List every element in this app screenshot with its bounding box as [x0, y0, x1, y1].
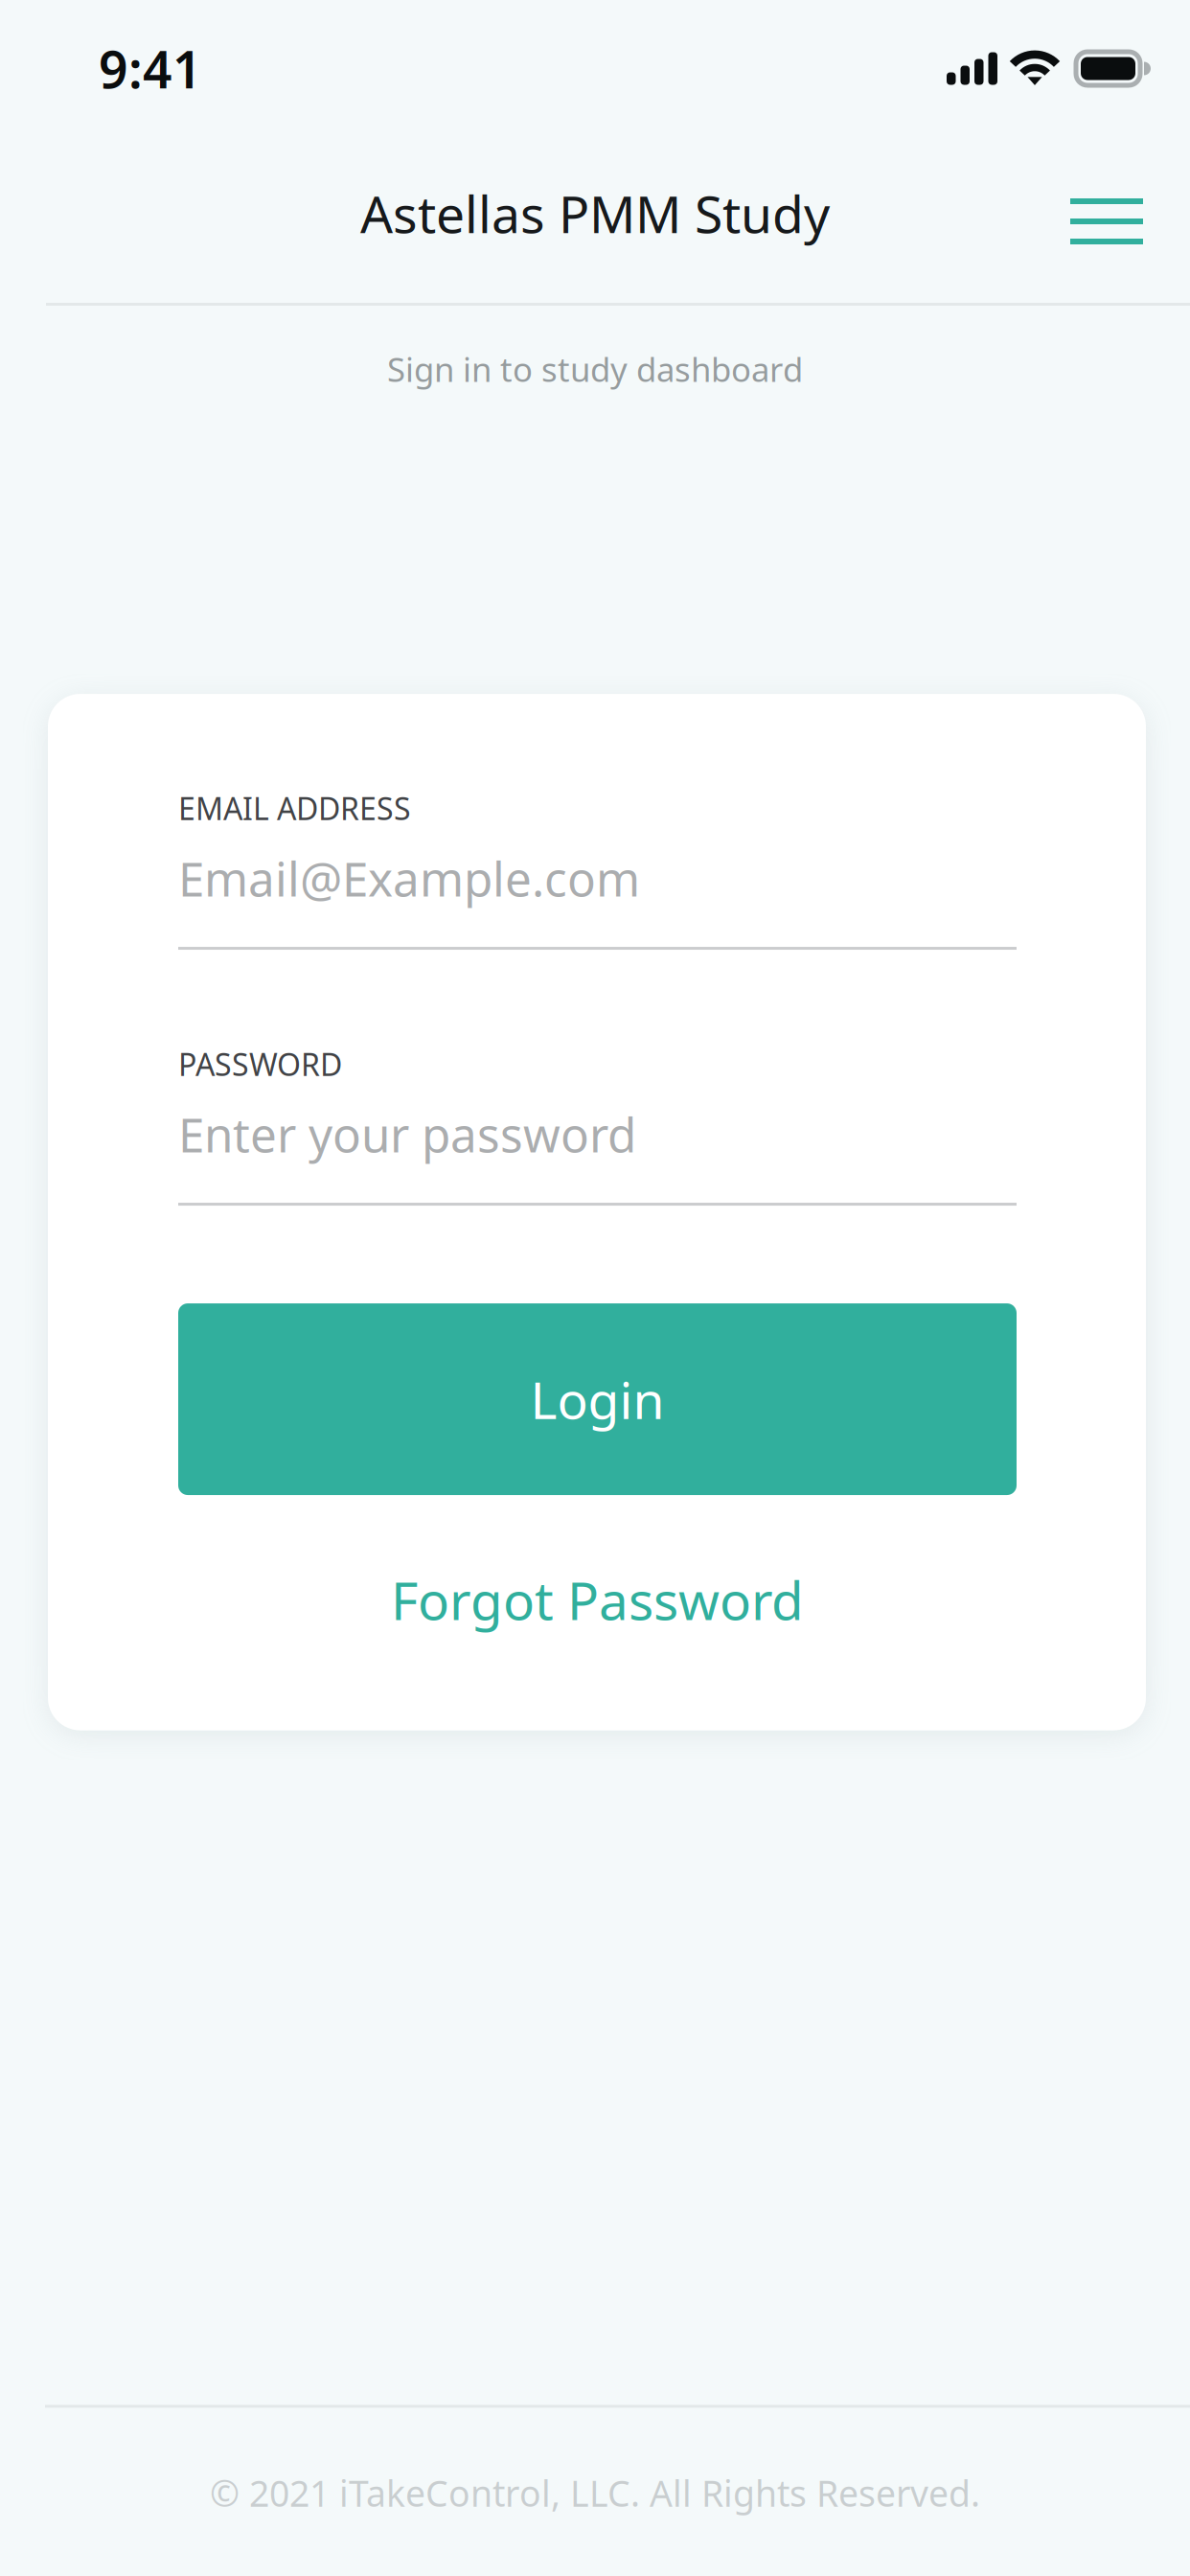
button[interactable]: Forgot Password	[178, 1565, 1017, 1635]
staticText: © 2021 iTakeControl, LLC. All Rights Res…	[210, 2469, 980, 2517]
staticText: PASSWORD	[178, 1044, 342, 1084]
button[interactable]: Menu	[1044, 137, 1190, 289]
staticText: Email@Example.com	[178, 847, 640, 909]
button[interactable]: Login	[178, 1303, 1017, 1495]
staticText: 9:41	[99, 35, 202, 102]
staticText: Forgot Password	[391, 1565, 804, 1635]
staticText: Sign in to study dashboard	[387, 347, 803, 391]
staticText: Astellas PMM Study	[360, 179, 830, 247]
staticText: Enter your password	[178, 1103, 636, 1165]
staticText: EMAIL ADDRESS	[178, 788, 411, 828]
staticText: Login	[530, 1365, 664, 1433]
